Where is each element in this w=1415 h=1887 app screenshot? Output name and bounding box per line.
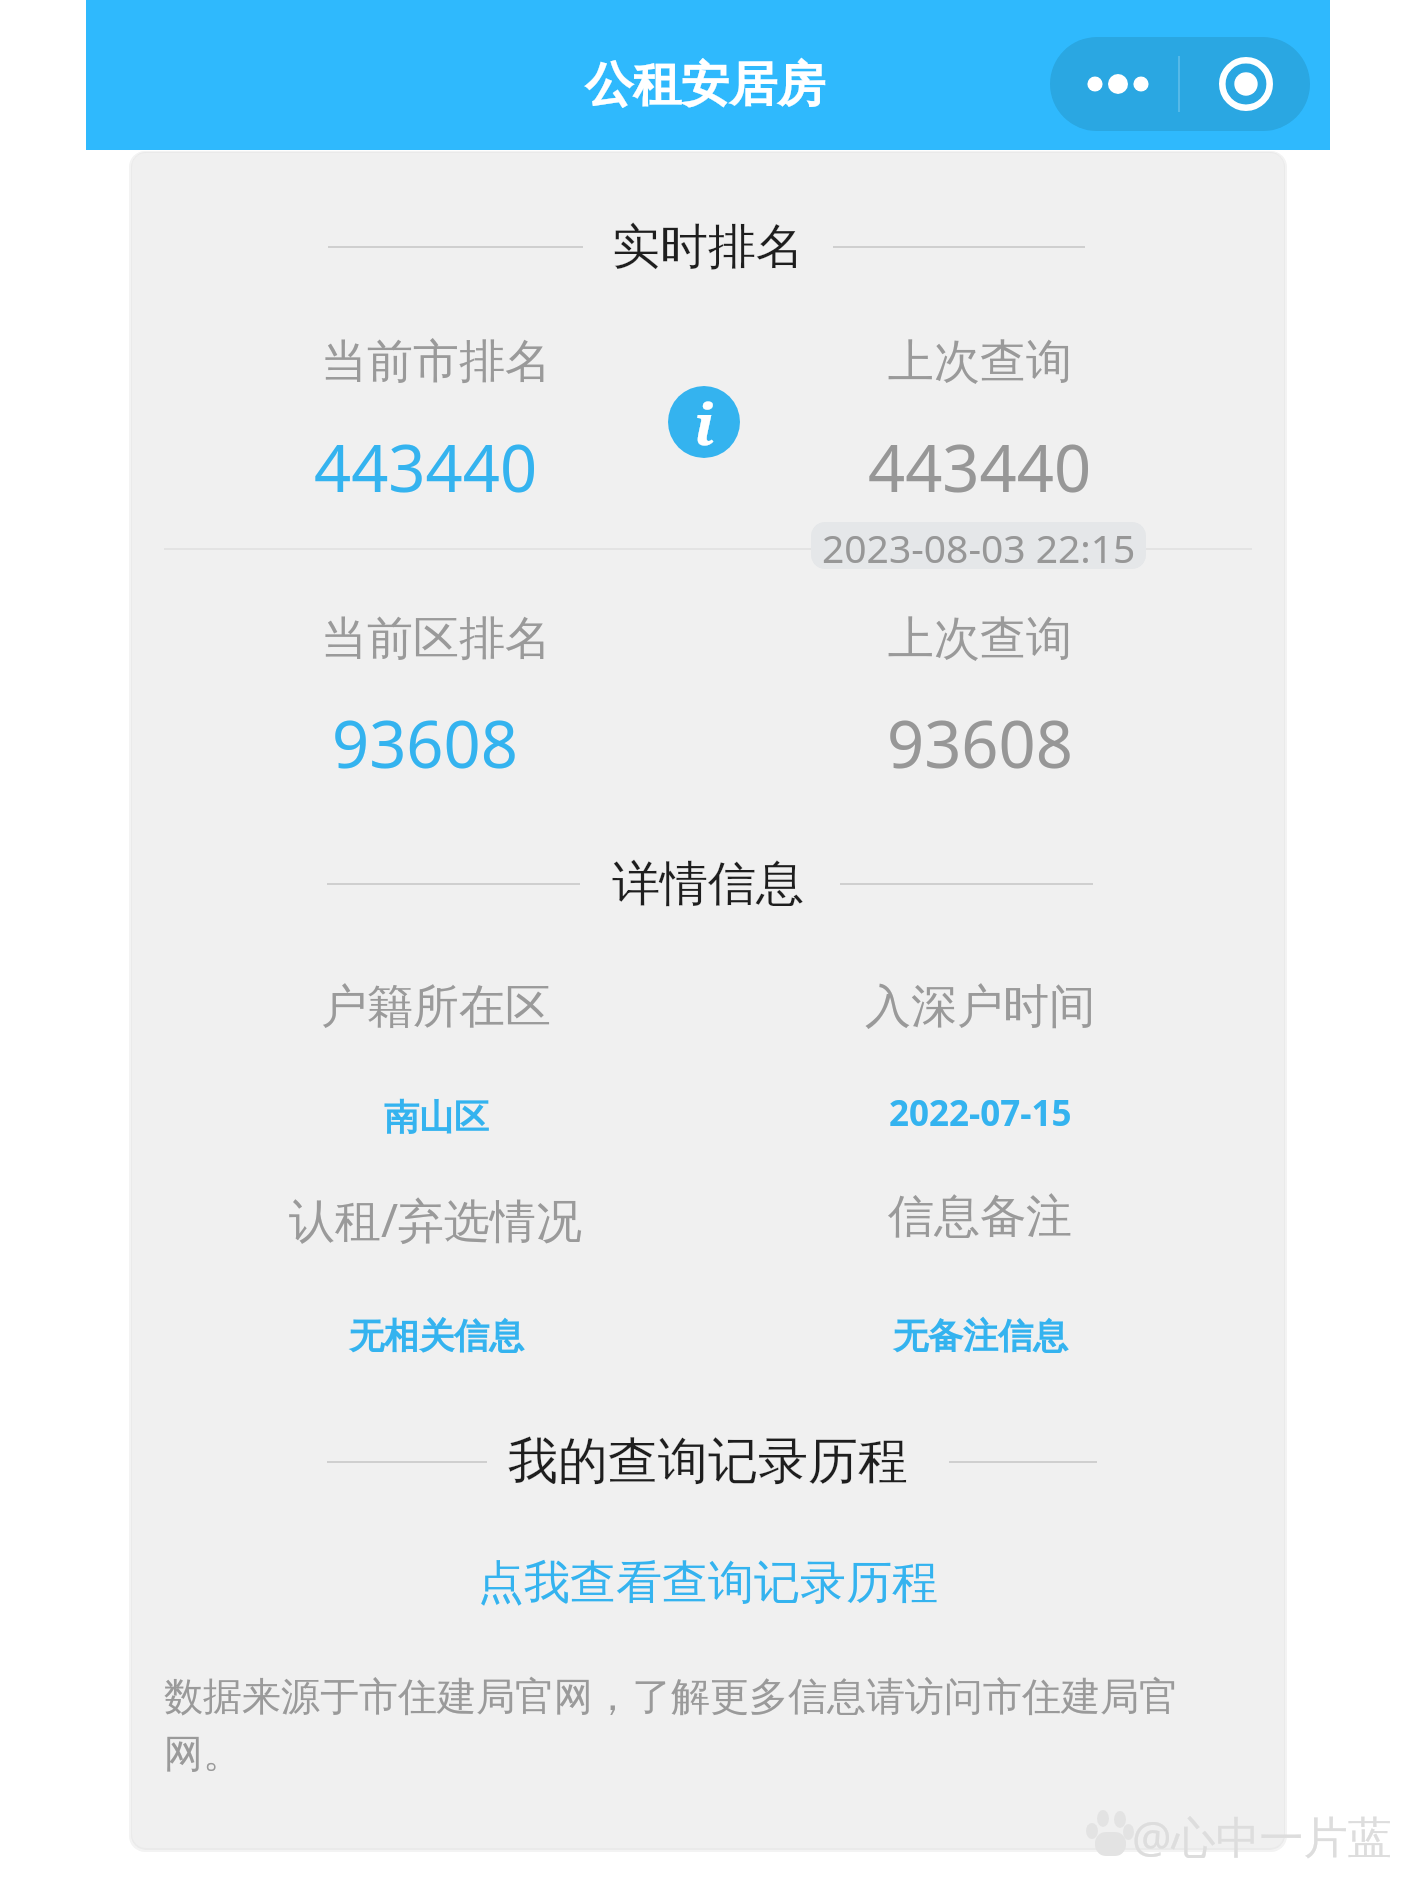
staticText: 南山区	[384, 1095, 489, 1139]
button[interactable]: 点我查看查询记录历程	[478, 1554, 938, 1612]
staticText: 443440	[868, 423, 1092, 512]
staticText: 93608	[887, 699, 1073, 788]
staticText: 上次查询	[888, 610, 1072, 668]
staticText: 点我查看查询记录历程	[478, 1554, 938, 1612]
button[interactable]: More options	[1050, 37, 1179, 131]
staticText: 信息备注	[888, 1188, 1072, 1246]
staticText: 户籍所在区	[321, 978, 551, 1036]
staticText: @心中一片蓝	[1132, 1806, 1392, 1866]
button[interactable]: Info	[668, 386, 740, 458]
staticText: 无备注信息	[893, 1314, 1068, 1358]
staticText: 详情信息	[612, 854, 804, 914]
staticText: 上次查询	[888, 333, 1072, 391]
staticText: 我的查询记录历程	[508, 1430, 908, 1493]
staticText: i	[694, 386, 715, 456]
staticText: 无相关信息	[349, 1314, 524, 1358]
staticText: 当前区排名	[321, 610, 551, 668]
staticText: 公租安居房	[585, 55, 825, 115]
staticText: 实时排名	[612, 217, 804, 277]
staticText: 数据来源于市住建局官网，了解更多信息请访问市住建局官网。	[164, 1672, 1252, 1779]
button[interactable]: Close mini program	[1181, 37, 1310, 131]
staticText: 当前市排名	[321, 333, 551, 391]
staticText: 2022-07-15	[889, 1089, 1072, 1137]
staticText: 443440	[314, 423, 538, 512]
staticText: 2023-08-03 22:15	[822, 522, 1136, 568]
staticText: 入深户时间	[865, 978, 1095, 1036]
staticText: 认租/弃选情况	[289, 1188, 583, 1251]
staticText: 93608	[332, 699, 518, 788]
